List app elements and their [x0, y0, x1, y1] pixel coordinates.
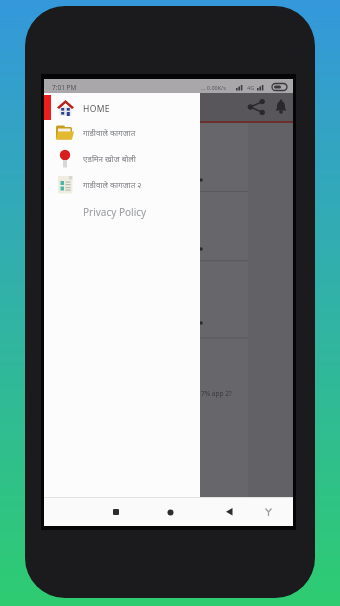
button[interactable]: गाडीवाले कागजात	[44, 120, 200, 145]
button[interactable]: HOME	[44, 95, 200, 120]
staticText: HOME	[83, 103, 110, 115]
staticText: 7% app 2?	[201, 389, 232, 398]
button[interactable]: Privacy Policy	[44, 199, 200, 224]
button[interactable]	[261, 505, 275, 519]
button[interactable]	[222, 505, 236, 519]
button[interactable]: एडमिन खोज बोली	[44, 146, 200, 171]
staticText: … 0.00K/s	[201, 84, 226, 91]
staticText: गाडीवाले कागजात	[83, 127, 136, 138]
button[interactable]	[246, 97, 266, 117]
button[interactable]	[163, 505, 177, 519]
button[interactable]	[109, 505, 123, 519]
staticText: Privacy Policy	[83, 205, 147, 219]
staticText: 7:01 PM	[52, 83, 77, 92]
staticText: गाडीवाले कागजात २	[83, 179, 142, 190]
staticText: 4G	[247, 84, 255, 91]
button[interactable]: गाडीवाले कागजात २	[44, 172, 200, 198]
staticText: एडमिन खोज बोली	[83, 153, 136, 164]
button[interactable]	[271, 97, 291, 117]
